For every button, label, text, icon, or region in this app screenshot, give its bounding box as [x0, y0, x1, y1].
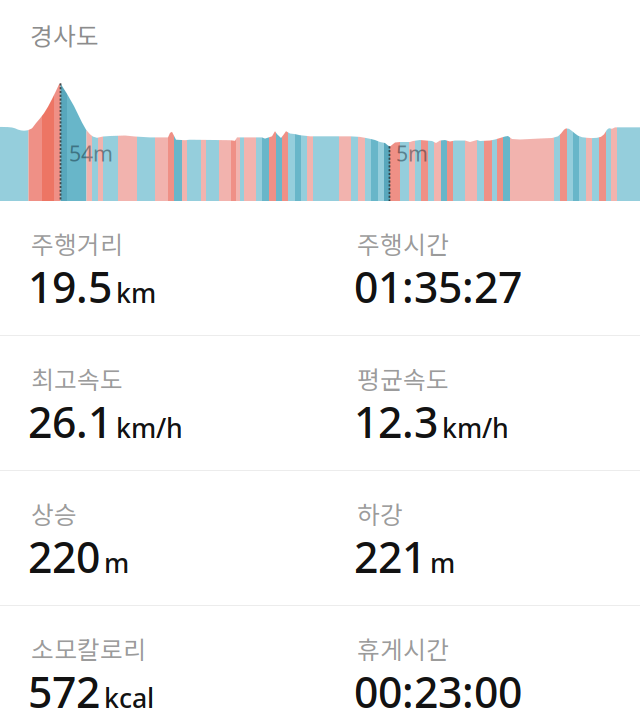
- staticText: 하강: [357, 495, 403, 531]
- staticText: m: [104, 545, 129, 580]
- button[interactable]: 상승: [31, 495, 357, 585]
- staticText: km: [116, 275, 156, 310]
- button[interactable]: 주행거리: [31, 225, 357, 315]
- staticText: 54m: [69, 139, 113, 167]
- staticText: km/h: [116, 410, 183, 445]
- staticText: 00:23:00: [354, 663, 522, 720]
- staticText: 소모칼로리: [31, 630, 146, 666]
- staticText: m: [430, 545, 455, 580]
- staticText: 220: [28, 528, 100, 585]
- staticText: 221: [354, 528, 426, 585]
- staticText: 최고속도: [31, 360, 123, 396]
- staticText: kcal: [104, 680, 154, 715]
- staticText: 주행시간: [357, 225, 449, 261]
- staticText: 26.1: [28, 393, 112, 450]
- staticText: 경사도: [30, 17, 99, 53]
- staticText: 평균속도: [357, 360, 449, 396]
- button[interactable]: 소모칼로리: [31, 630, 357, 720]
- staticText: 상승: [31, 495, 77, 531]
- staticText: km/h: [442, 410, 509, 445]
- staticText: 주행거리: [31, 225, 123, 261]
- staticText: 01:35:27: [354, 258, 522, 315]
- staticText: 12.3: [354, 393, 438, 450]
- staticText: 572: [28, 663, 100, 720]
- staticText: 19.5: [28, 258, 112, 315]
- button[interactable]: 하강: [357, 495, 640, 585]
- staticText: 휴게시간: [357, 630, 449, 666]
- button[interactable]: 평균속도: [357, 360, 640, 450]
- button[interactable]: 휴게시간: [357, 630, 640, 720]
- button[interactable]: 최고속도: [31, 360, 357, 450]
- staticText: 5m: [396, 139, 428, 167]
- button[interactable]: 주행시간: [357, 225, 640, 315]
